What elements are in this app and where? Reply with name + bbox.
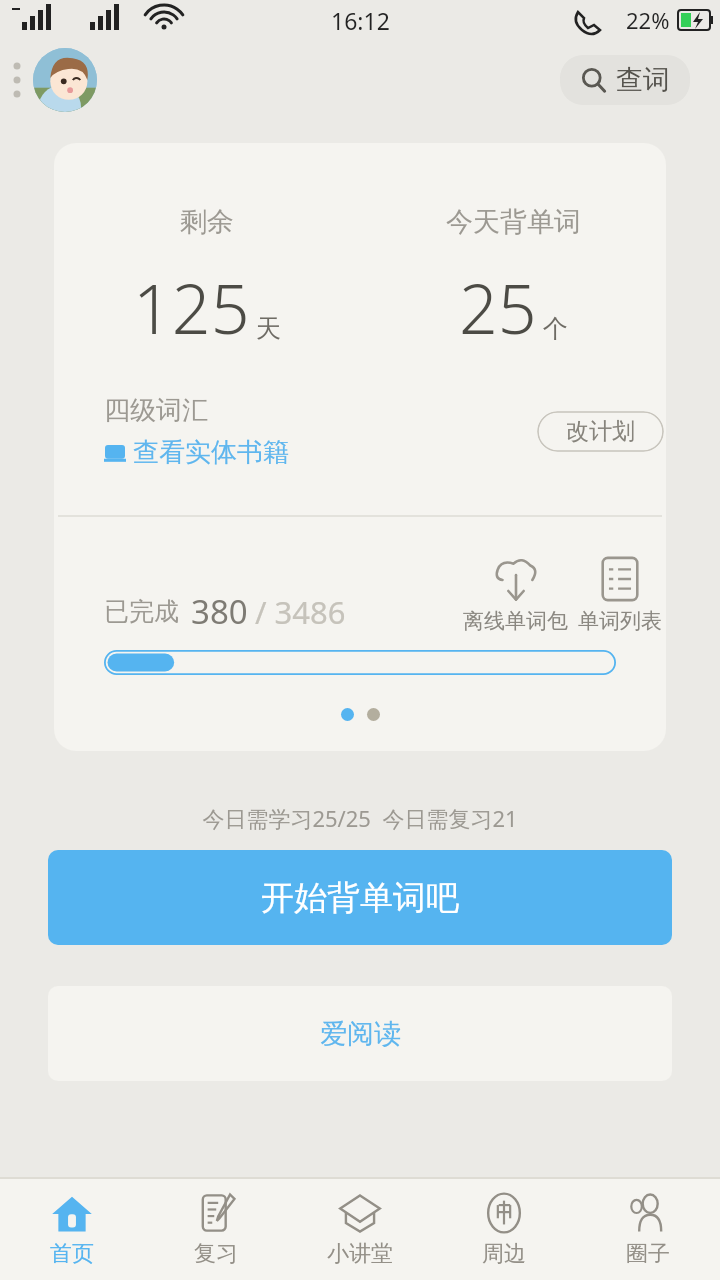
button[interactable]: 查看实体书籍	[104, 436, 289, 469]
staticText: 改计划	[566, 417, 635, 446]
staticText: 剩余	[180, 205, 234, 239]
staticText: 圈子	[626, 1240, 670, 1268]
staticText: 首页	[50, 1240, 94, 1268]
other: Offline word pack	[492, 555, 540, 603]
staticText: 查词	[616, 63, 670, 97]
staticText: 16:12	[331, 5, 390, 36]
button[interactable]: 查词	[560, 55, 690, 105]
button[interactable]: 复习	[144, 1179, 288, 1280]
button[interactable]: Offline word pack	[461, 555, 570, 634]
staticText: 125	[133, 261, 250, 354]
staticText: 380	[191, 589, 248, 634]
button[interactable]: More options	[6, 55, 28, 105]
staticText: 查看实体书籍	[133, 436, 289, 469]
button[interactable]: Word list	[576, 555, 664, 634]
button[interactable]: 周边	[432, 1179, 576, 1280]
staticText: 今日需学习25/25 今日需复习21	[0, 803, 720, 833]
staticText: 爱阅读	[320, 1017, 401, 1051]
staticText: 复习	[194, 1240, 238, 1268]
button[interactable]: 小讲堂	[288, 1179, 432, 1280]
staticText: 小讲堂	[327, 1240, 393, 1268]
staticText: / 3486	[255, 591, 346, 633]
staticText: 单词列表	[578, 608, 662, 634]
button[interactable]: 圈子	[576, 1179, 720, 1280]
button[interactable]: 改计划	[537, 411, 664, 452]
staticText: 离线单词包	[463, 608, 568, 634]
other: Word list	[596, 555, 644, 603]
button[interactable]: 开始背单词吧	[48, 850, 672, 945]
button[interactable]: Profile	[33, 48, 97, 112]
button[interactable]: 爱阅读	[48, 986, 672, 1081]
staticText: 个	[543, 313, 568, 344]
staticText: 22%	[626, 5, 670, 35]
staticText: 开始背单词吧	[261, 877, 459, 919]
staticText: 今天背单词	[446, 205, 581, 239]
staticText: 已完成	[104, 596, 179, 627]
staticText: 25	[459, 261, 537, 354]
staticText: 四级词汇	[104, 394, 208, 427]
staticText: 天	[256, 313, 281, 344]
button[interactable]: 首页	[0, 1179, 144, 1280]
staticText: 周边	[482, 1240, 526, 1268]
